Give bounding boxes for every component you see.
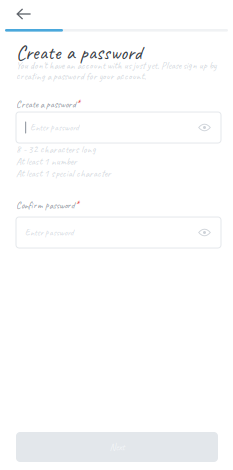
staticText: At least 1 number bbox=[16, 155, 77, 168]
staticText: Create a password bbox=[16, 98, 76, 110]
staticText: You don't have an account with us just y… bbox=[16, 59, 216, 82]
staticText: * bbox=[75, 199, 79, 211]
staticText: At least 1 special character bbox=[16, 167, 111, 180]
staticText: Enter password bbox=[30, 122, 79, 133]
staticText: * bbox=[76, 98, 80, 110]
staticText: Confirm password bbox=[16, 199, 75, 211]
staticText: Enter password bbox=[25, 227, 74, 238]
staticText: 8 - 32 characters long bbox=[16, 143, 96, 156]
button[interactable]: Enter password bbox=[16, 112, 221, 143]
button[interactable]: Enter password bbox=[16, 217, 221, 248]
staticText: Create a password bbox=[16, 40, 142, 65]
staticText: Next bbox=[109, 441, 124, 453]
button[interactable]: Back bbox=[0, 2, 52, 26]
